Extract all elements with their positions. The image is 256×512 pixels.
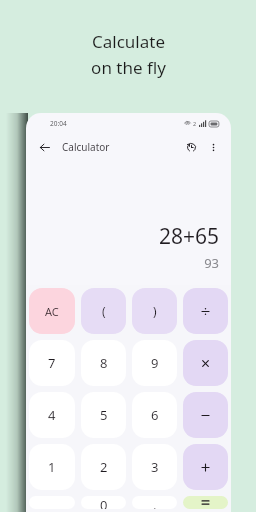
button[interactable]: 7	[29, 340, 75, 386]
button[interactable]: Equals	[183, 496, 228, 509]
button[interactable]: More options	[203, 137, 223, 157]
button[interactable]: Multiply	[183, 340, 228, 386]
staticText: (	[102, 303, 106, 319]
staticText: Calculator	[62, 140, 110, 154]
button[interactable]: Divide	[183, 288, 228, 334]
staticText: .	[153, 496, 157, 509]
button[interactable]: Back	[34, 137, 54, 157]
button[interactable]: (	[81, 288, 126, 334]
button[interactable]: 5	[81, 392, 126, 438]
staticText: 4	[48, 406, 56, 424]
button[interactable]: Subtract	[183, 392, 228, 438]
staticText: 2	[193, 120, 197, 127]
button[interactable]: )	[132, 288, 177, 334]
staticText: 5	[100, 406, 108, 424]
button[interactable]: Add	[183, 444, 228, 490]
button[interactable]: History	[181, 137, 201, 157]
button[interactable]: 1	[29, 444, 75, 490]
staticText: 93	[204, 254, 219, 272]
staticText: on the fly	[91, 56, 166, 79]
staticText: 8	[100, 354, 108, 372]
button[interactable]: 3	[132, 444, 177, 490]
button[interactable]: AC	[29, 288, 75, 334]
staticText: 1	[48, 458, 56, 476]
button[interactable]: .	[132, 496, 177, 509]
button[interactable]: 4	[29, 392, 75, 438]
staticText: Calculate	[92, 30, 165, 53]
button[interactable]: 8	[81, 340, 126, 386]
staticText: AC	[45, 304, 59, 319]
staticText: 0	[100, 496, 108, 509]
staticText: 6	[151, 406, 159, 424]
staticText: 7	[48, 354, 56, 372]
button[interactable]: 0	[81, 496, 126, 509]
staticText: 20:04	[50, 119, 67, 128]
button[interactable]: 6	[132, 392, 177, 438]
staticText: 28+65	[158, 222, 219, 251]
staticText: 9	[151, 354, 159, 372]
staticText: 3	[151, 458, 159, 476]
staticText: )	[153, 303, 157, 319]
button[interactable]: 9	[132, 340, 177, 386]
staticText: 2	[100, 458, 108, 476]
button[interactable]: 2	[81, 444, 126, 490]
